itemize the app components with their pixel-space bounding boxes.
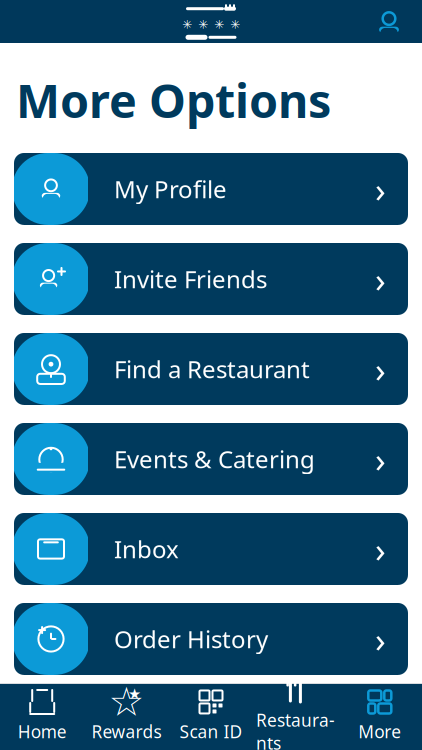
staticText: Home (18, 720, 67, 743)
staticText: › (375, 616, 386, 662)
staticText: › (375, 346, 386, 392)
staticText: › (375, 166, 386, 212)
staticText: › (375, 436, 386, 482)
staticText: Restaurants (256, 708, 335, 750)
button[interactable]: More (338, 680, 422, 750)
staticText: ✳ (198, 18, 208, 31)
button[interactable]: Invite Friends (14, 243, 408, 315)
button[interactable]: Order History (14, 603, 408, 675)
staticText: More Options (16, 69, 331, 131)
staticText: Find a Restaurant (114, 353, 310, 385)
staticText: Inbox (114, 533, 179, 565)
button[interactable]: ☆ (84, 680, 169, 750)
staticText: ☆ (109, 679, 145, 725)
staticText: ✳ (182, 18, 192, 31)
button[interactable]: Events & Catering (14, 423, 408, 495)
staticText: Scan ID (179, 720, 242, 743)
staticText: Invite Friends (114, 263, 267, 295)
button[interactable]: Restaurants (253, 668, 338, 750)
staticText: Rewards (92, 720, 162, 743)
staticText: My Profile (114, 173, 227, 205)
button[interactable]: Account (374, 5, 422, 37)
button[interactable]: Find a Restaurant (14, 333, 408, 405)
staticText: ✳ (214, 18, 224, 31)
staticText: › (375, 256, 386, 302)
staticText: ✳ (230, 18, 240, 31)
button[interactable]: Inbox (14, 513, 408, 585)
button[interactable]: Scan ID (169, 680, 253, 750)
button[interactable]: My Profile (14, 153, 408, 225)
staticText: Order History (114, 623, 268, 655)
staticText: Events & Catering (114, 443, 315, 475)
staticText: ★ (128, 686, 141, 702)
staticText: More (358, 720, 401, 743)
staticText: › (375, 526, 386, 572)
button[interactable]: Home (0, 680, 84, 750)
